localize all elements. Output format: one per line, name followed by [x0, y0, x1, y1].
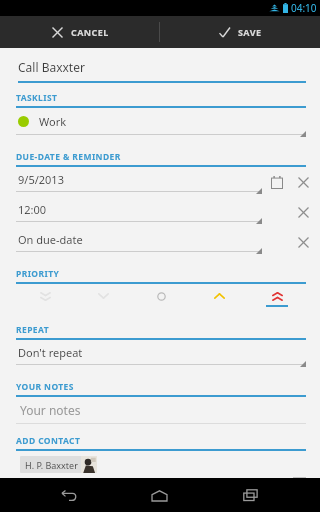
staticText: Call Baxxter — [18, 59, 85, 75]
button[interactable]: 12:00 — [0, 197, 266, 227]
staticText: REPEAT — [16, 324, 49, 336]
staticText: Don't repeat — [18, 345, 83, 360]
staticText: SAVE — [238, 26, 262, 38]
button[interactable]: Don't repeat — [0, 340, 320, 370]
button[interactable]: SAVE — [160, 16, 320, 48]
staticText: 9/5/2013 — [18, 172, 64, 187]
button[interactable]: Back — [48, 478, 90, 512]
staticText: CANCEL — [71, 26, 109, 38]
button[interactable]: 9/5/2013 — [0, 167, 266, 197]
staticText: H. P. Baxxter — [25, 459, 78, 471]
staticText: 04:10 — [291, 1, 317, 15]
staticText: TASKLIST — [16, 92, 58, 104]
button[interactable]: Work — [0, 108, 320, 140]
staticText: DUE-DATE & REMINDER — [16, 151, 121, 163]
button[interactable]: Clear — [290, 169, 316, 195]
button[interactable]: CANCEL — [0, 16, 159, 48]
staticText: Your notes — [20, 402, 81, 418]
button[interactable]: High priority — [190, 284, 248, 314]
button[interactable]: Pick date — [266, 171, 288, 193]
staticText: Work — [39, 114, 67, 129]
staticText: YOUR NOTES — [16, 381, 74, 393]
button[interactable]: Recent apps — [229, 478, 271, 512]
button[interactable]: On due-date — [0, 227, 266, 257]
button[interactable]: Clear — [290, 199, 316, 225]
button[interactable]: Normal priority — [132, 284, 190, 314]
staticText: ADD CONTACT — [16, 435, 81, 447]
button[interactable]: Highest priority — [248, 284, 306, 314]
staticText: On due-date — [18, 232, 83, 247]
button[interactable]: Home — [138, 478, 180, 512]
button[interactable]: Clear — [290, 229, 316, 255]
staticText: PRIORITY — [16, 268, 60, 280]
staticText: 12:00 — [18, 202, 47, 217]
button[interactable]: H. P. Baxxter — [20, 456, 97, 473]
button[interactable]: Your notes — [0, 397, 320, 424]
